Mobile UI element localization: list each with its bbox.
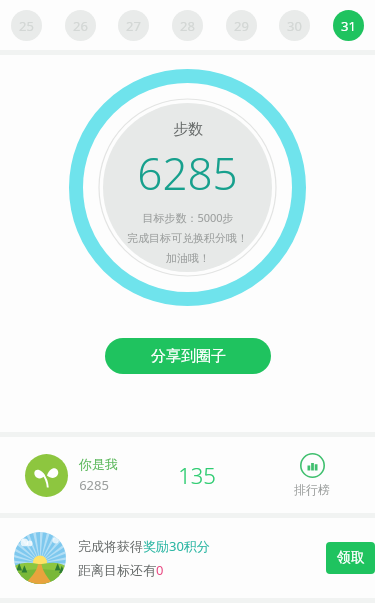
button[interactable]: 你是我 — [0, 437, 375, 513]
staticText: 27 — [126, 17, 141, 35]
button[interactable]: 分享到圈子 — [105, 338, 271, 374]
button[interactable]: 25 — [11, 10, 42, 41]
button[interactable]: 31 — [333, 10, 364, 41]
staticText: 距离目标还有0 — [78, 561, 164, 579]
button[interactable]: 领取 — [326, 542, 375, 574]
staticText: 你是我 — [79, 456, 118, 472]
staticText: 6285 — [79, 476, 109, 494]
staticText: 28 — [180, 17, 195, 35]
staticText: 25 — [19, 17, 34, 35]
button[interactable]: 26 — [65, 10, 96, 41]
staticText: 135 — [178, 460, 216, 490]
button[interactable]: 排行榜 — [294, 453, 330, 497]
staticText: 完成将获得奖励30积分 — [78, 537, 210, 555]
button[interactable]: 28 — [172, 10, 203, 41]
staticText: 完成目标可兑换积分哦！ — [127, 231, 248, 245]
staticText: 30 — [287, 17, 302, 35]
button[interactable]: 30 — [279, 10, 310, 41]
staticText: 29 — [234, 17, 249, 35]
staticText: 领取 — [337, 549, 365, 567]
staticText: 分享到圈子 — [151, 347, 226, 366]
staticText: 31 — [341, 17, 356, 35]
button[interactable]: 29 — [226, 10, 257, 41]
staticText: 排行榜 — [294, 482, 330, 497]
staticText: 步数 — [173, 120, 203, 139]
staticText: 26 — [73, 17, 88, 35]
staticText: 目标步数：5000步 — [142, 210, 234, 225]
button[interactable]: 27 — [118, 10, 149, 41]
staticText: 加油哦！ — [166, 251, 210, 265]
staticText: 6285 — [137, 143, 238, 203]
